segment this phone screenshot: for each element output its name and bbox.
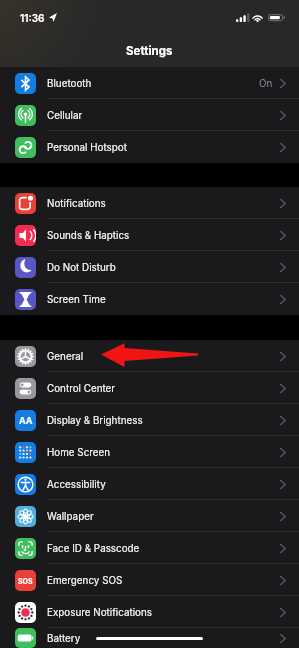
button[interactable]: Personal Hotspot [0,131,299,163]
button[interactable]: Cellular [0,99,299,131]
button[interactable]: Home Screen [0,436,299,468]
staticText: Home Screen [47,446,111,458]
button[interactable]: Exposure Notifications [0,596,299,628]
staticText: AA [19,415,33,426]
staticText: Bluetooth [47,77,92,89]
button[interactable]: General [0,340,299,372]
button[interactable]: Wallpaper [0,500,299,532]
staticText: Display & Brightness [47,414,143,426]
button[interactable]: Notifications [0,187,299,219]
staticText: Notifications [47,197,106,209]
staticText: Do Not Disturb [47,261,116,273]
staticText: SOS [18,577,33,585]
staticText: Sounds & Haptics [47,229,130,241]
button[interactable]: Sounds & Haptics [0,219,299,251]
staticText: Cellular [47,109,83,121]
staticText: Personal Hotspot [47,141,127,153]
button[interactable]: AA [0,404,299,436]
staticText: On [259,77,273,89]
button[interactable]: Accessibility [0,468,299,500]
staticText: Face ID & Passcode [47,542,140,554]
button[interactable]: Bluetooth [0,67,299,99]
button[interactable]: Battery [0,628,299,648]
staticText: Control Center [47,382,116,394]
button[interactable]: Control Center [0,372,299,404]
button[interactable]: SOS [0,564,299,596]
button[interactable]: Face ID & Passcode [0,532,299,564]
button[interactable]: Screen Time [0,283,299,315]
button[interactable]: Do Not Disturb [0,251,299,283]
staticText: Wallpaper [47,510,94,522]
staticText: Exposure Notifications [47,606,153,618]
staticText: 11:36 [20,12,45,24]
staticText: General [47,350,84,362]
staticText: Settings [126,44,173,58]
staticText: Accessibility [47,478,106,490]
staticText: Battery [47,632,81,644]
staticText: Emergency SOS [47,574,123,586]
staticText: Screen Time [47,293,106,305]
